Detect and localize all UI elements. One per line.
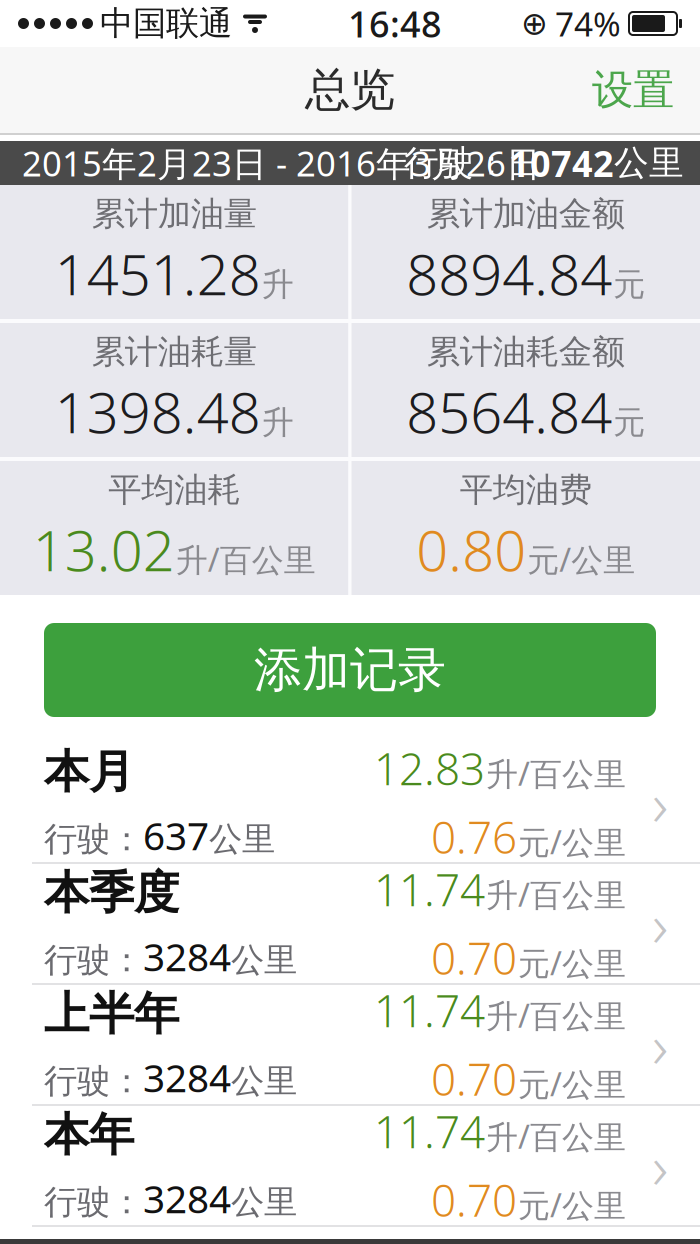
staticText: 行驶：: [404, 142, 509, 184]
staticText: 元: [613, 265, 645, 304]
staticText: 10742: [509, 139, 614, 187]
staticText: 本年: [44, 1107, 134, 1163]
staticText: 公里: [231, 1182, 297, 1223]
staticText: 11.74: [374, 981, 485, 1039]
staticText: 上半年: [44, 986, 179, 1042]
staticText: 总览: [305, 62, 395, 118]
staticText: 8894.84: [406, 236, 612, 311]
staticText: 行驶：: [44, 819, 143, 860]
staticText: 元/公里: [518, 1184, 626, 1226]
staticText: 3284: [143, 931, 231, 982]
staticText: 累计油耗金额: [427, 331, 625, 372]
staticText: 升/百公里: [486, 873, 626, 916]
staticText: 本季度: [44, 865, 179, 921]
staticText: 2015年2月23日 - 2016年3月26日: [22, 140, 541, 186]
staticText: 元: [613, 403, 645, 442]
staticText: 升/百公里: [486, 1115, 626, 1158]
staticText: 平均油耗: [108, 469, 240, 510]
staticText: 74%: [555, 1, 621, 46]
staticText: 12.83: [374, 739, 485, 797]
staticText: 本月: [44, 744, 134, 800]
staticText: ›: [652, 1004, 668, 1085]
staticText: 11.74: [374, 1102, 485, 1160]
staticText: ›: [652, 883, 668, 964]
staticText: 平均油费: [460, 469, 592, 510]
staticText: 元/公里: [518, 821, 626, 863]
staticText: 3284: [143, 1052, 231, 1103]
staticText: 累计加油金额: [427, 193, 625, 234]
button[interactable]: 添加记录: [44, 623, 656, 717]
staticText: 累计加油量: [92, 193, 257, 234]
staticText: 1451.28: [55, 236, 261, 311]
staticText: 0.70: [431, 1170, 517, 1229]
staticText: 元/公里: [518, 942, 626, 984]
staticText: 公里: [231, 1061, 297, 1102]
staticText: 行驶：: [44, 1061, 143, 1102]
staticText: 公里: [231, 940, 297, 981]
button[interactable]: 本月: [0, 743, 700, 862]
staticText: 行驶：: [44, 940, 143, 981]
staticText: ⊕: [521, 5, 548, 42]
staticText: 11.74: [374, 860, 485, 918]
staticText: 设置: [592, 65, 674, 115]
staticText: 升/百公里: [486, 994, 626, 1037]
staticText: 13.02: [33, 512, 175, 587]
staticText: 公里: [614, 142, 684, 184]
button[interactable]: 上半年: [0, 983, 700, 1104]
staticText: 8564.84: [406, 374, 612, 449]
staticText: 0.80: [416, 512, 526, 587]
staticText: 累计油耗量: [92, 331, 257, 372]
staticText: 1398.48: [55, 374, 261, 449]
staticText: 升/百公里: [176, 538, 316, 580]
staticText: ›: [652, 1125, 668, 1206]
staticText: 元/公里: [518, 1063, 626, 1105]
staticText: 升: [262, 403, 294, 442]
staticText: 升: [262, 265, 294, 304]
staticText: 公里: [209, 819, 275, 860]
staticText: 添加记录: [254, 640, 446, 699]
staticText: 637: [143, 810, 209, 861]
staticText: ›: [652, 762, 668, 843]
staticText: 0.76: [431, 807, 517, 866]
button[interactable]: 本年: [0, 1104, 700, 1225]
staticText: 行驶：: [44, 1182, 143, 1223]
button[interactable]: 设置: [576, 53, 690, 127]
staticText: 升/百公里: [486, 752, 626, 795]
staticText: 0.70: [431, 928, 517, 987]
staticText: 中国联通: [100, 3, 232, 44]
staticText: 3284: [143, 1173, 231, 1224]
staticText: 16:48: [348, 0, 442, 47]
staticText: 元/公里: [527, 538, 635, 580]
staticText: 0.70: [431, 1049, 517, 1108]
button[interactable]: 本季度: [0, 862, 700, 983]
